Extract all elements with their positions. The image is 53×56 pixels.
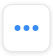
button[interactable]: More options [3,4,50,51]
